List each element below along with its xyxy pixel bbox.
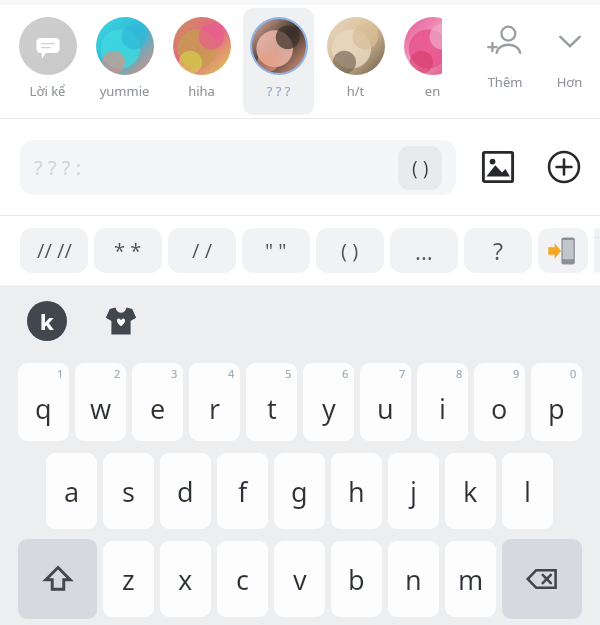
staticText: x (178, 561, 193, 598)
button[interactable]: " " (242, 228, 310, 273)
button[interactable]: 0 (531, 363, 582, 441)
button[interactable]: Parentheses (398, 146, 442, 190)
staticText: ( ) (412, 155, 429, 181)
staticText: Hơn (539, 73, 600, 91)
staticText: // // (37, 237, 72, 264)
staticText: 6 (342, 366, 349, 381)
staticText: Lời kể (12, 82, 83, 100)
button[interactable]: x (160, 541, 211, 617)
button[interactable]: m (445, 541, 496, 617)
button[interactable]: j (388, 453, 439, 529)
staticText: en (397, 82, 468, 100)
button[interactable]: l (502, 453, 553, 529)
button[interactable]: Hơn (539, 5, 600, 118)
staticText: 0 (570, 366, 577, 381)
button[interactable]: ( ) (316, 228, 384, 273)
button[interactable]: 2 (75, 363, 126, 441)
button[interactable]: ? (464, 228, 532, 273)
button[interactable]: v (274, 541, 325, 617)
button[interactable]: 7 (360, 363, 411, 441)
staticText: u (377, 390, 394, 427)
button[interactable]: Gallery (478, 147, 518, 187)
staticText: h/t (320, 82, 391, 100)
button[interactable]: ? ? ? : (20, 140, 456, 195)
staticText: ? ? ? (243, 82, 314, 100)
button[interactable]: 4 (189, 363, 240, 441)
staticText: ? (493, 235, 503, 266)
staticText: c (236, 561, 249, 598)
staticText: " " (265, 237, 287, 264)
button[interactable]: Stickers (100, 300, 142, 342)
staticText: b (348, 561, 365, 598)
staticText: yummie (89, 82, 160, 100)
staticText: y (322, 390, 336, 427)
button[interactable]: Add (544, 147, 584, 187)
staticText: j (410, 473, 417, 510)
staticText: l (524, 473, 531, 510)
staticText: r (209, 390, 221, 427)
staticText: f (238, 473, 248, 510)
button[interactable]: Send to phone (538, 228, 588, 273)
button[interactable]: hiha (166, 8, 237, 115)
button[interactable]: 5 (246, 363, 297, 441)
button[interactable]: 9 (474, 363, 525, 441)
staticText: m (458, 561, 484, 598)
button[interactable]: h (331, 453, 382, 529)
staticText: w (90, 390, 112, 427)
staticText: 4 (228, 366, 235, 381)
staticText: v (293, 561, 307, 598)
button[interactable]: d (160, 453, 211, 529)
staticText: 1 (57, 366, 64, 381)
button[interactable]: Thêm (471, 5, 539, 118)
staticText: 9 (513, 366, 520, 381)
staticText: Thêm (471, 73, 539, 91)
button[interactable]: g (274, 453, 325, 529)
button[interactable]: ? ? ? (243, 8, 314, 115)
staticText: / / (192, 237, 213, 264)
staticText: hiha (166, 82, 237, 100)
button[interactable]: f (217, 453, 268, 529)
staticText: g (291, 473, 308, 510)
staticText: o (491, 390, 508, 427)
staticText: a (64, 473, 80, 510)
button[interactable]: 6 (303, 363, 354, 441)
button[interactable]: h/t (320, 8, 391, 115)
button[interactable]: z (103, 541, 154, 617)
staticText: t (267, 390, 277, 427)
staticText: 5 (285, 366, 292, 381)
staticText: k (463, 473, 478, 510)
button[interactable]: 8 (417, 363, 468, 441)
button[interactable]: / / (168, 228, 236, 273)
button[interactable]: Typing sticker (594, 228, 600, 273)
button[interactable]: en (397, 8, 468, 115)
staticText: p (548, 390, 565, 427)
staticText: e (150, 390, 166, 427)
staticText: q (35, 390, 52, 427)
staticText: ( ) (341, 237, 359, 264)
button[interactable]: Backspace (502, 539, 582, 619)
button[interactable]: ... (390, 228, 458, 273)
staticText: i (439, 390, 446, 427)
button[interactable]: k (445, 453, 496, 529)
button[interactable]: yummie (89, 8, 160, 115)
button[interactable]: Lời kể (12, 8, 83, 115)
button[interactable]: s (103, 453, 154, 529)
button[interactable]: * * (94, 228, 162, 273)
staticText: s (122, 473, 135, 510)
button[interactable]: 3 (132, 363, 183, 441)
staticText: 3 (171, 366, 178, 381)
staticText: d (177, 473, 194, 510)
staticText: n (405, 561, 422, 598)
staticText: 7 (399, 366, 406, 381)
button[interactable]: c (217, 541, 268, 617)
button[interactable]: Shift (18, 539, 97, 619)
button[interactable]: 1 (18, 363, 69, 441)
staticText: ? ? ? : (34, 154, 81, 181)
button[interactable]: b (331, 541, 382, 617)
staticText: 2 (114, 366, 121, 381)
button[interactable]: // // (20, 228, 88, 273)
button[interactable]: a (46, 453, 97, 529)
button[interactable]: Kika keyboard (26, 300, 68, 342)
button[interactable]: n (388, 541, 439, 617)
staticText: h (348, 473, 365, 510)
